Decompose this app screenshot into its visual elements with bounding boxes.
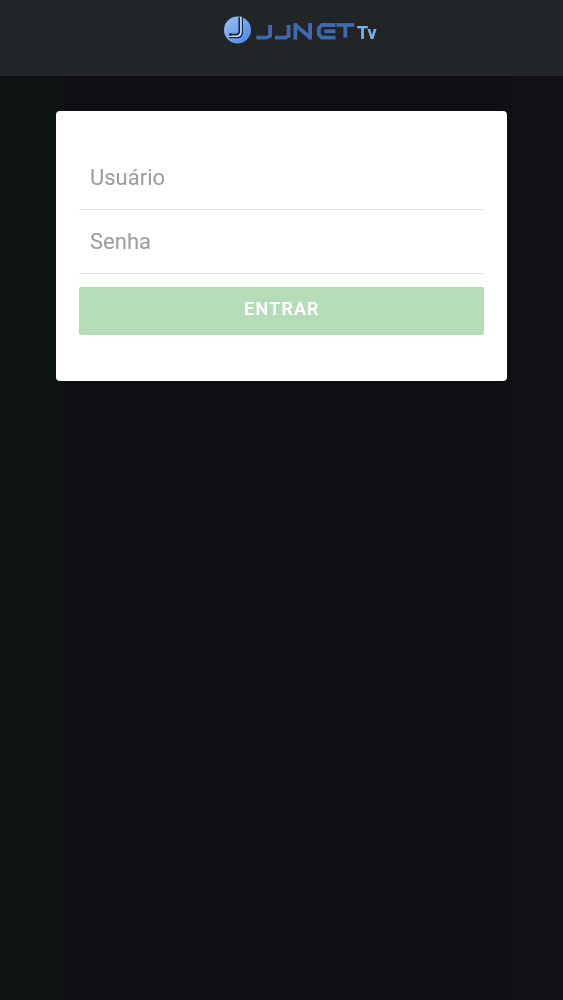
button[interactable]: JJNET Tv — [224, 16, 377, 44]
staticText: Senha — [90, 229, 151, 255]
button[interactable]: Usuário — [79, 161, 484, 210]
staticText: ENTRAR — [244, 298, 320, 319]
button[interactable]: Senha — [79, 225, 484, 274]
button[interactable]: ENTRAR — [79, 287, 484, 335]
staticText: Tv — [357, 22, 377, 43]
staticText: Usuário — [90, 165, 166, 191]
